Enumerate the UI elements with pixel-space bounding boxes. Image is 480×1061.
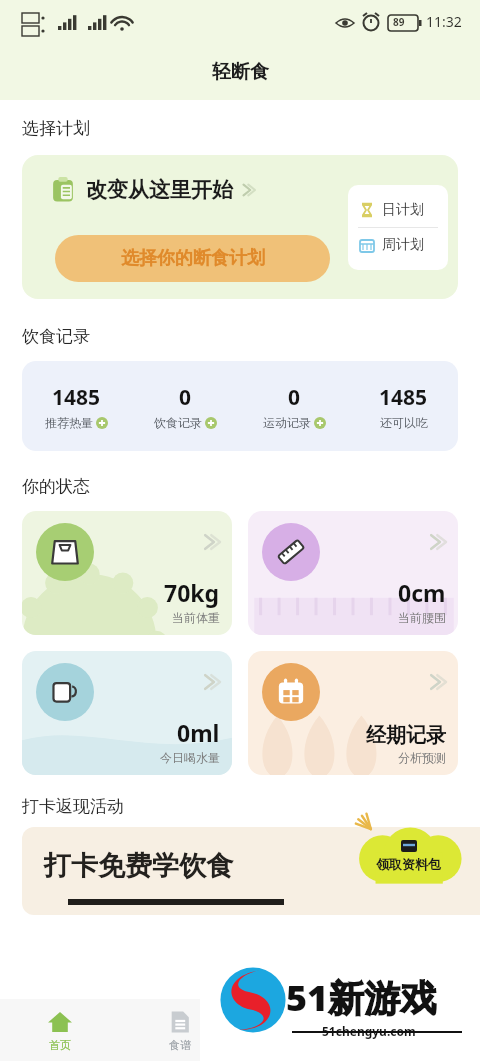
- staticText: 还可以吃: [380, 415, 428, 430]
- staticText: 饮食记录: [154, 415, 202, 430]
- button[interactable]: 详情: [22, 511, 232, 635]
- staticText: 首页: [49, 1038, 71, 1052]
- button[interactable]: 详情: [428, 673, 446, 691]
- staticText: 0: [179, 383, 192, 412]
- staticText: 周计划: [382, 236, 424, 254]
- button[interactable]: 详情: [202, 533, 220, 551]
- staticText: 你的状态: [22, 476, 90, 497]
- button[interactable]: 1485: [22, 361, 458, 451]
- staticText: 当前体重: [172, 610, 220, 625]
- staticText: 日计划: [382, 201, 424, 219]
- button[interactable]: 日计划: [348, 193, 448, 227]
- button[interactable]: 首页: [0, 999, 120, 1061]
- staticText: 1485: [52, 383, 101, 412]
- button[interactable]: 1485: [349, 383, 458, 430]
- button[interactable]: 详情: [22, 651, 232, 775]
- staticText: 51chengyu.com: [322, 1023, 416, 1039]
- staticText: 当前腰围: [398, 610, 446, 625]
- staticText: 分析预测: [398, 750, 446, 765]
- staticText: 轻断食: [212, 60, 269, 84]
- button[interactable]: 详情: [248, 511, 458, 635]
- button[interactable]: 详情: [248, 651, 458, 775]
- staticText: 饮食记录: [22, 326, 90, 347]
- staticText: 51新游戏: [286, 973, 437, 1022]
- button[interactable]: 0: [240, 383, 349, 430]
- button[interactable]: 周计划: [348, 228, 448, 262]
- staticText: 0: [288, 383, 301, 412]
- staticText: 11:32: [426, 12, 462, 31]
- button[interactable]: 详情: [428, 533, 446, 551]
- staticText: 打卡免费学饮食: [44, 849, 233, 883]
- button[interactable]: 标签: [360, 999, 480, 1061]
- staticText: 运动记录: [263, 415, 311, 430]
- button[interactable]: 打卡免费学饮食: [22, 827, 480, 915]
- staticText: 今日喝水量: [160, 750, 220, 765]
- staticText: 选择计划: [22, 118, 90, 139]
- button[interactable]: 详情: [202, 673, 220, 691]
- staticText: 0ml: [177, 717, 220, 748]
- button[interactable]: 选择你的断食计划: [55, 235, 330, 282]
- staticText: 推荐热量: [45, 415, 93, 430]
- button[interactable]: 标签: [240, 999, 360, 1061]
- staticText: 改变从这里开始: [86, 177, 233, 203]
- staticText: 70kg: [164, 577, 220, 608]
- staticText: 食谱: [169, 1038, 191, 1052]
- button[interactable]: 1485: [22, 383, 131, 430]
- staticText: 选择你的断食计划: [121, 247, 265, 270]
- staticText: 领取资料包: [376, 856, 441, 872]
- staticText: 打卡返现活动: [22, 796, 124, 817]
- button[interactable]: 食谱: [120, 999, 240, 1061]
- button[interactable]: 改变从这里开始: [22, 155, 458, 299]
- staticText: 1485: [379, 383, 428, 412]
- staticText: 89: [393, 15, 405, 29]
- staticText: 经期记录: [366, 723, 446, 748]
- staticText: 0cm: [398, 577, 446, 608]
- button[interactable]: 0: [131, 383, 240, 430]
